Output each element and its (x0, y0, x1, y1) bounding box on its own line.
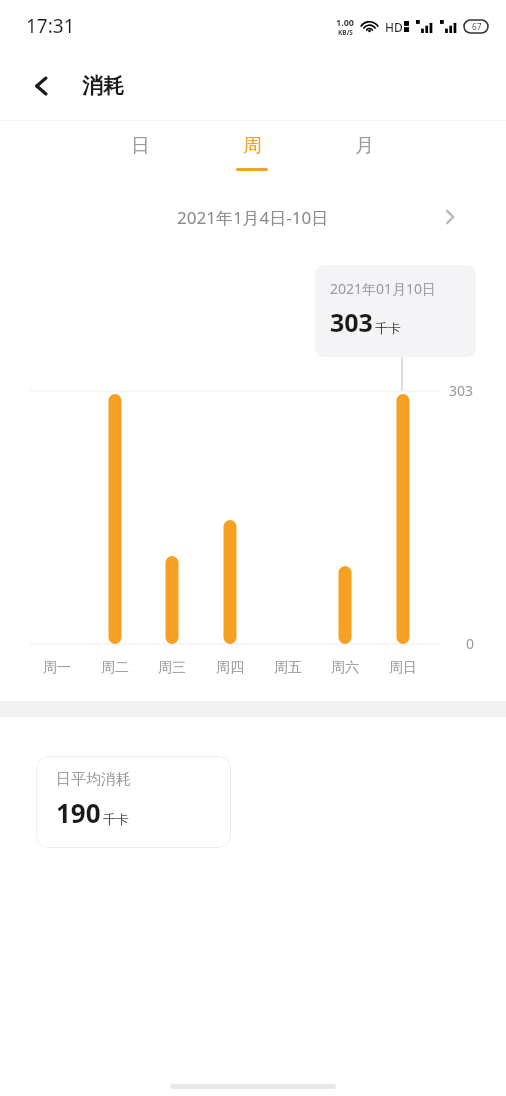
staticText: KB/S (338, 28, 353, 37)
staticText: 周二 (101, 659, 129, 677)
staticText: 日 (131, 134, 150, 158)
staticText: 2021年01月10日 (330, 279, 437, 298)
staticText: 月 (355, 134, 374, 158)
button[interactable]: 周 (196, 121, 308, 193)
button[interactable]: Back (18, 62, 66, 110)
staticText: 千卡 (103, 811, 129, 827)
staticText: 日平均消耗 (56, 770, 131, 789)
staticText: 周三 (158, 659, 186, 677)
staticText: 千卡 (375, 320, 401, 336)
other: Next period (438, 205, 462, 229)
staticText: 303 (330, 305, 373, 339)
staticText: 周一 (43, 659, 71, 677)
staticText: 17:31 (26, 13, 75, 39)
button[interactable]: 月 (308, 121, 420, 193)
staticText: 190 (56, 795, 101, 830)
staticText: 2021年1月4日-10日 (177, 206, 329, 229)
staticText: HD (385, 19, 403, 35)
staticText: 周日 (389, 659, 417, 677)
staticText: 1.00 (336, 16, 354, 28)
button[interactable]: 日 (84, 121, 196, 193)
staticText: 周五 (274, 659, 302, 677)
staticText: 周六 (331, 659, 359, 677)
button[interactable]: 2021年1月4日-10日 (0, 193, 506, 241)
button[interactable]: 日平均消耗 (36, 756, 231, 848)
staticText: 周 (243, 134, 262, 158)
staticText: 0 (466, 634, 475, 653)
staticText: 67 (472, 21, 482, 33)
staticText: 周四 (216, 659, 244, 677)
staticText: 303 (449, 381, 474, 400)
staticText: 消耗 (82, 73, 124, 99)
